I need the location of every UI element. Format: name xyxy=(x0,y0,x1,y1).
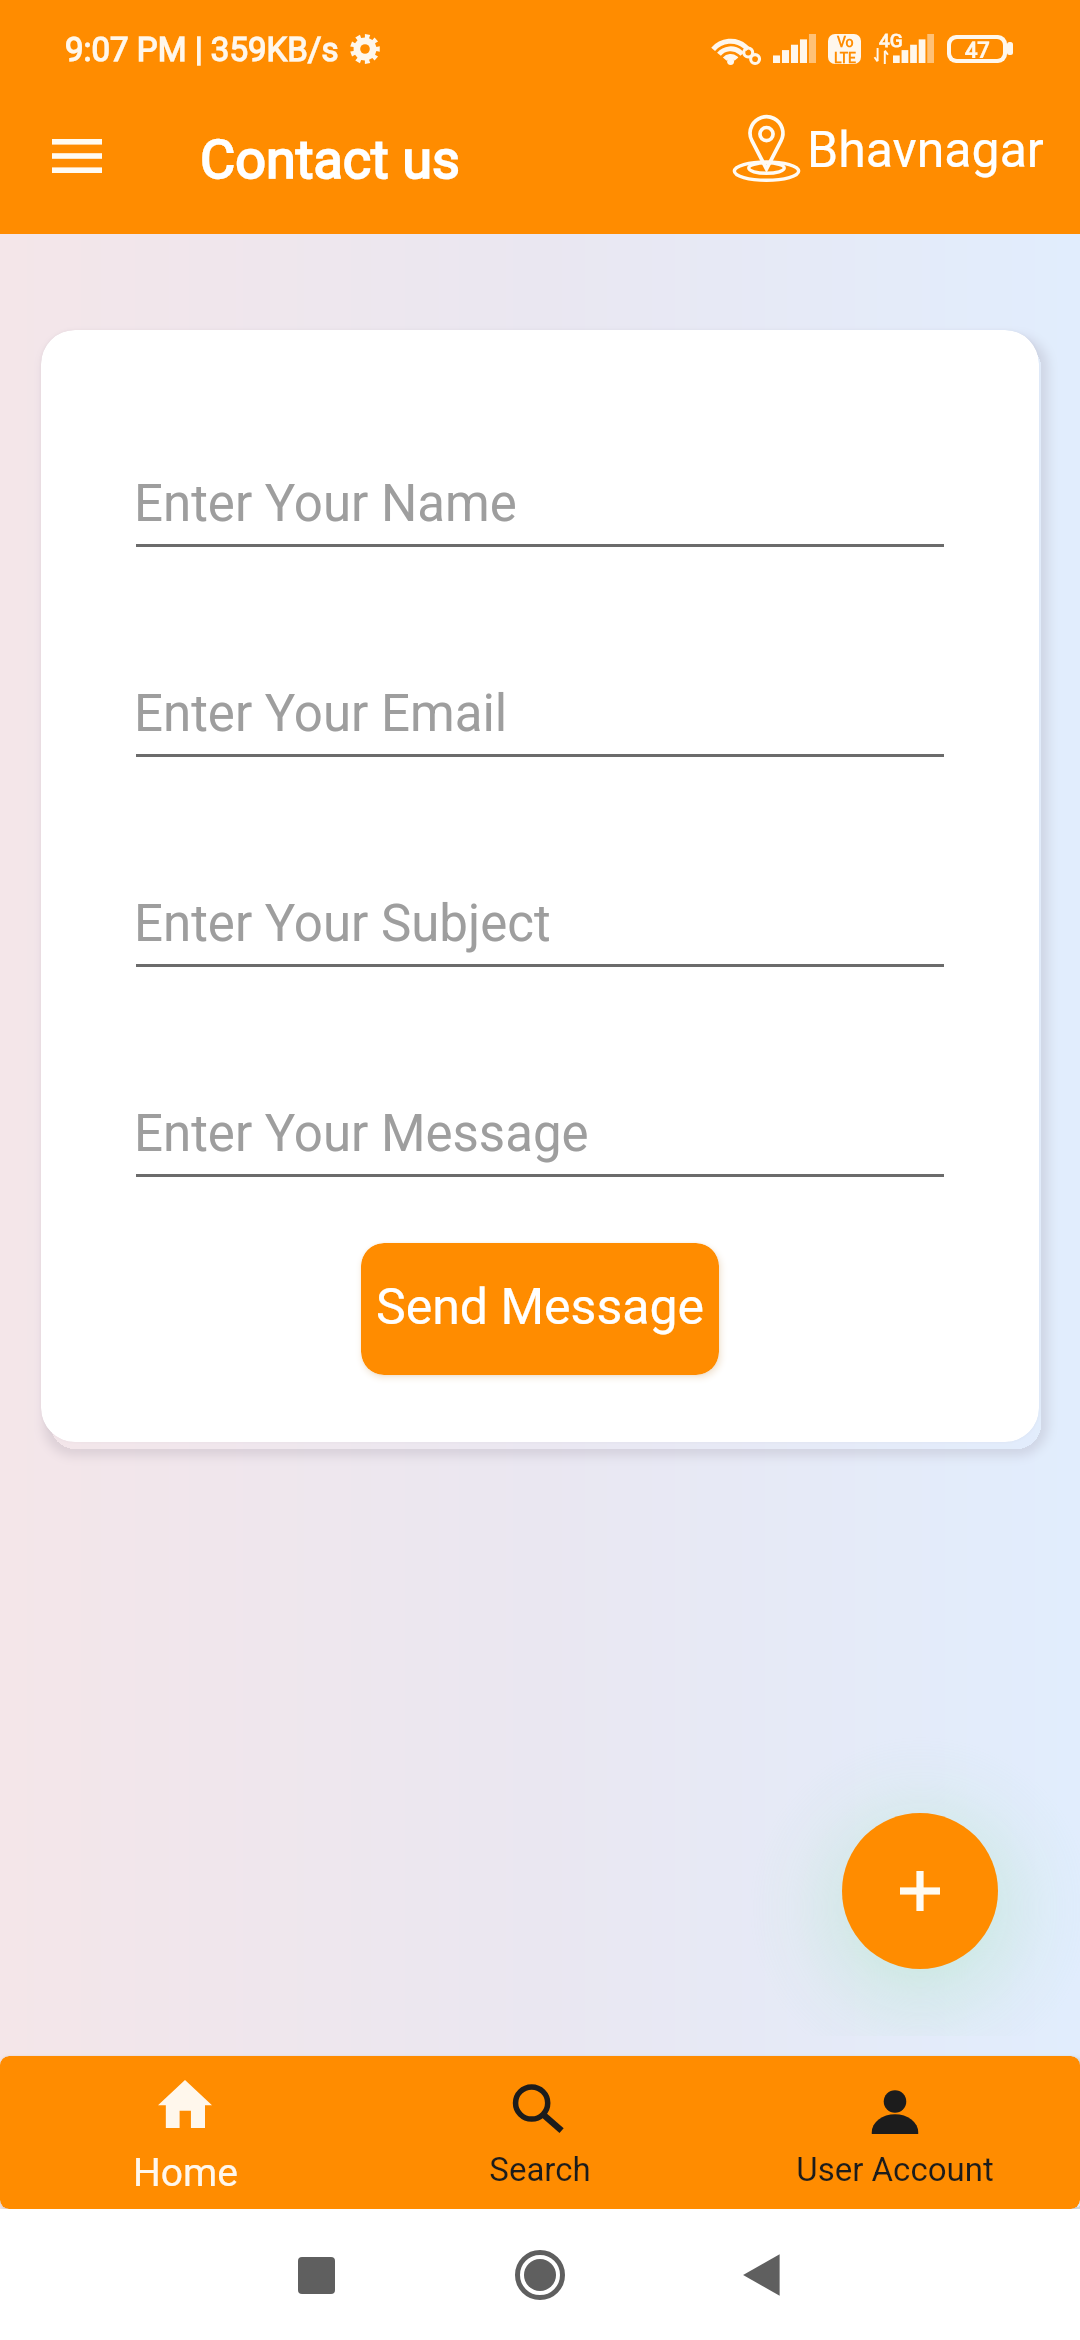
button[interactable]: Back xyxy=(716,2229,808,2321)
staticText: LTE xyxy=(834,50,856,64)
button[interactable]: Menu xyxy=(31,110,123,202)
button[interactable]: Bhavnagar xyxy=(722,106,1046,202)
button[interactable]: Add xyxy=(842,1813,998,1969)
button[interactable]: Enter Your Message xyxy=(136,1084,944,1177)
button[interactable]: Home xyxy=(8,2056,362,2209)
button[interactable]: User Account xyxy=(717,2056,1072,2209)
staticText: Vo xyxy=(837,34,854,50)
staticText: 47 xyxy=(965,39,990,58)
button[interactable]: Send Message xyxy=(361,1243,719,1375)
button[interactable]: Enter Your Subject xyxy=(136,874,944,967)
staticText: Contact us xyxy=(200,128,460,191)
staticText: Enter Your Message xyxy=(134,1104,589,1164)
staticText: Enter Your Name xyxy=(134,474,517,534)
staticText: Enter Your Subject xyxy=(134,894,551,954)
button[interactable]: Search xyxy=(362,2056,717,2209)
staticText: Search xyxy=(489,2150,591,2189)
staticText: 4G xyxy=(879,29,903,51)
staticText: 9:07 PM | 359KB/s xyxy=(65,30,339,69)
staticText: Send Message xyxy=(376,1278,704,1337)
staticText: User Account xyxy=(796,2150,994,2189)
staticText: Bhavnagar xyxy=(807,121,1044,180)
button[interactable]: Enter Your Email xyxy=(136,664,944,757)
button[interactable]: Home xyxy=(494,2229,586,2321)
button[interactable]: Enter Your Name xyxy=(136,454,944,547)
staticText: Home xyxy=(133,2150,238,2196)
button[interactable]: Recents xyxy=(270,2229,362,2321)
staticText: Enter Your Email xyxy=(134,684,508,744)
